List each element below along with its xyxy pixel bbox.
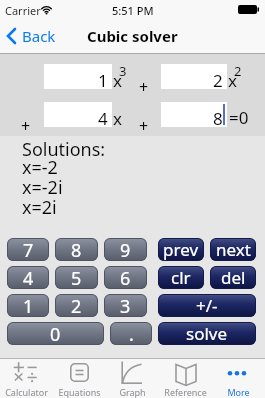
button[interactable]: Back (6, 24, 56, 48)
button[interactable]: 8 (161, 102, 227, 127)
button[interactable]: prev (158, 238, 204, 261)
staticText: 4 (98, 107, 108, 130)
button[interactable] (159, 359, 212, 398)
staticText: 3 (120, 294, 131, 317)
button[interactable]: 1 (7, 294, 49, 317)
button[interactable]: 4 (44, 102, 112, 127)
staticText: x=2i (22, 195, 57, 220)
button[interactable]: 0 (7, 322, 104, 345)
staticText: . (129, 322, 134, 345)
staticText: Back (22, 26, 56, 46)
button[interactable]: solve (158, 322, 256, 345)
button[interactable]: 5 (55, 266, 98, 289)
staticText: 9 (120, 238, 131, 261)
staticText: next (216, 238, 251, 261)
staticText: 1 (23, 294, 34, 317)
staticText: 2 (71, 294, 82, 317)
button[interactable]: . (110, 322, 152, 345)
button[interactable]: 7 (7, 238, 49, 261)
staticText: Solutions: (22, 137, 106, 162)
button[interactable]: 4 (7, 266, 49, 289)
staticText: prev (163, 238, 199, 261)
staticText: x (113, 107, 122, 130)
staticText: 7 (23, 238, 34, 261)
staticText: Reference (164, 386, 207, 398)
staticText: 5 (71, 266, 82, 289)
staticText: 2 (213, 69, 223, 92)
staticText: Graph (119, 386, 146, 398)
staticText: x (113, 69, 122, 92)
staticText: x=-2 (22, 155, 58, 180)
staticText: =0 (229, 106, 249, 129)
button[interactable] (0, 359, 53, 398)
staticText: + (21, 115, 31, 137)
staticText: x (228, 69, 237, 92)
button[interactable]: 1 (44, 64, 112, 89)
staticText: More (227, 386, 250, 398)
button[interactable]: next (210, 238, 256, 261)
button[interactable] (53, 359, 106, 398)
button[interactable]: del (210, 266, 256, 289)
staticText: Cubic solver (87, 26, 178, 46)
staticText: + (139, 76, 149, 98)
staticText: +/- (196, 294, 218, 317)
button[interactable]: 2 (161, 64, 227, 89)
staticText: 6 (120, 266, 131, 289)
staticText: Carrier (5, 3, 41, 18)
button[interactable]: clr (158, 266, 204, 289)
staticText: del (221, 266, 246, 289)
button[interactable]: 9 (104, 238, 147, 261)
staticText: Calculator (5, 386, 48, 398)
staticText: solve (186, 322, 228, 345)
button[interactable]: +/- (158, 294, 256, 317)
staticText: 1 (98, 69, 108, 92)
staticText: Equations (58, 386, 101, 398)
staticText: 0 (50, 322, 61, 345)
button[interactable]: 2 (55, 294, 98, 317)
button[interactable] (212, 359, 265, 398)
staticText: clr (171, 266, 191, 289)
staticText: 8 (71, 238, 82, 261)
staticText: 3 (119, 62, 127, 80)
staticText: + (139, 115, 149, 137)
staticText: 2 (234, 62, 242, 80)
button[interactable]: 6 (104, 266, 147, 289)
button[interactable] (106, 359, 159, 398)
staticText: x=-2i (22, 175, 63, 200)
staticText: 5:51 PM (112, 3, 154, 17)
button[interactable]: 8 (55, 238, 98, 261)
staticText: 8 (213, 107, 223, 130)
button[interactable]: 3 (104, 294, 147, 317)
staticText: 4 (23, 266, 34, 289)
